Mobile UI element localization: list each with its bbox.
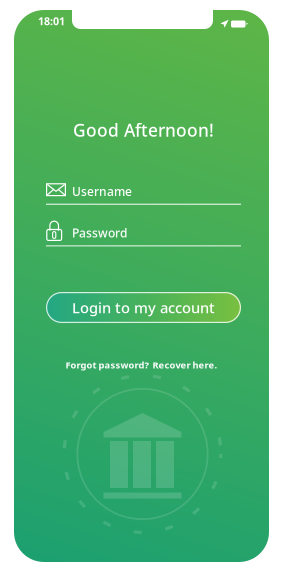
- staticText: Good Afternoon!: [73, 118, 214, 141]
- staticText: Password: [72, 225, 127, 241]
- staticText: 18:01: [38, 14, 65, 28]
- staticText: Forgot password? Recover here.: [65, 359, 217, 371]
- staticText: Username: [72, 183, 132, 199]
- button[interactable]: Forgot password? Recover here.: [14, 359, 269, 371]
- button[interactable]: Login to my account: [46, 292, 241, 323]
- staticText: Login to my account: [72, 298, 215, 317]
